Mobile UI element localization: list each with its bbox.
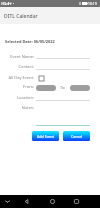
staticText: Location: — [16, 95, 34, 100]
button[interactable]: pick time — [70, 85, 90, 91]
staticText: Cancel — [71, 134, 83, 139]
button[interactable]: Add Event — [32, 131, 59, 141]
staticText: Event Name: — [10, 54, 34, 59]
button[interactable]: Back — [20, 195, 32, 208]
button[interactable]: Hide keyboard — [1, 195, 13, 208]
staticText: Contact: — [18, 64, 34, 69]
button[interactable] — [36, 62, 90, 70]
staticText: Add Event — [37, 134, 55, 139]
staticText: To: — [60, 85, 66, 90]
staticText: HD — [1, 1, 6, 6]
button[interactable]: All day event checkbox — [39, 76, 44, 81]
staticText: DITL Calendar — [4, 13, 38, 20]
staticText: Notes: — [21, 105, 34, 110]
button[interactable] — [36, 51, 90, 59]
button[interactable]: Recents — [70, 195, 82, 208]
staticText: 10:19 — [88, 1, 97, 6]
staticText: All Day Event: — [8, 75, 34, 80]
button[interactable] — [36, 111, 90, 126]
button[interactable]: Home — [46, 195, 58, 208]
button[interactable]: pick time — [36, 85, 56, 91]
button[interactable]: Cancel — [63, 131, 90, 141]
staticText: Selected Date: 06/05/2022 — [5, 39, 55, 44]
button[interactable] — [36, 93, 90, 101]
staticText: From: — [23, 84, 34, 89]
